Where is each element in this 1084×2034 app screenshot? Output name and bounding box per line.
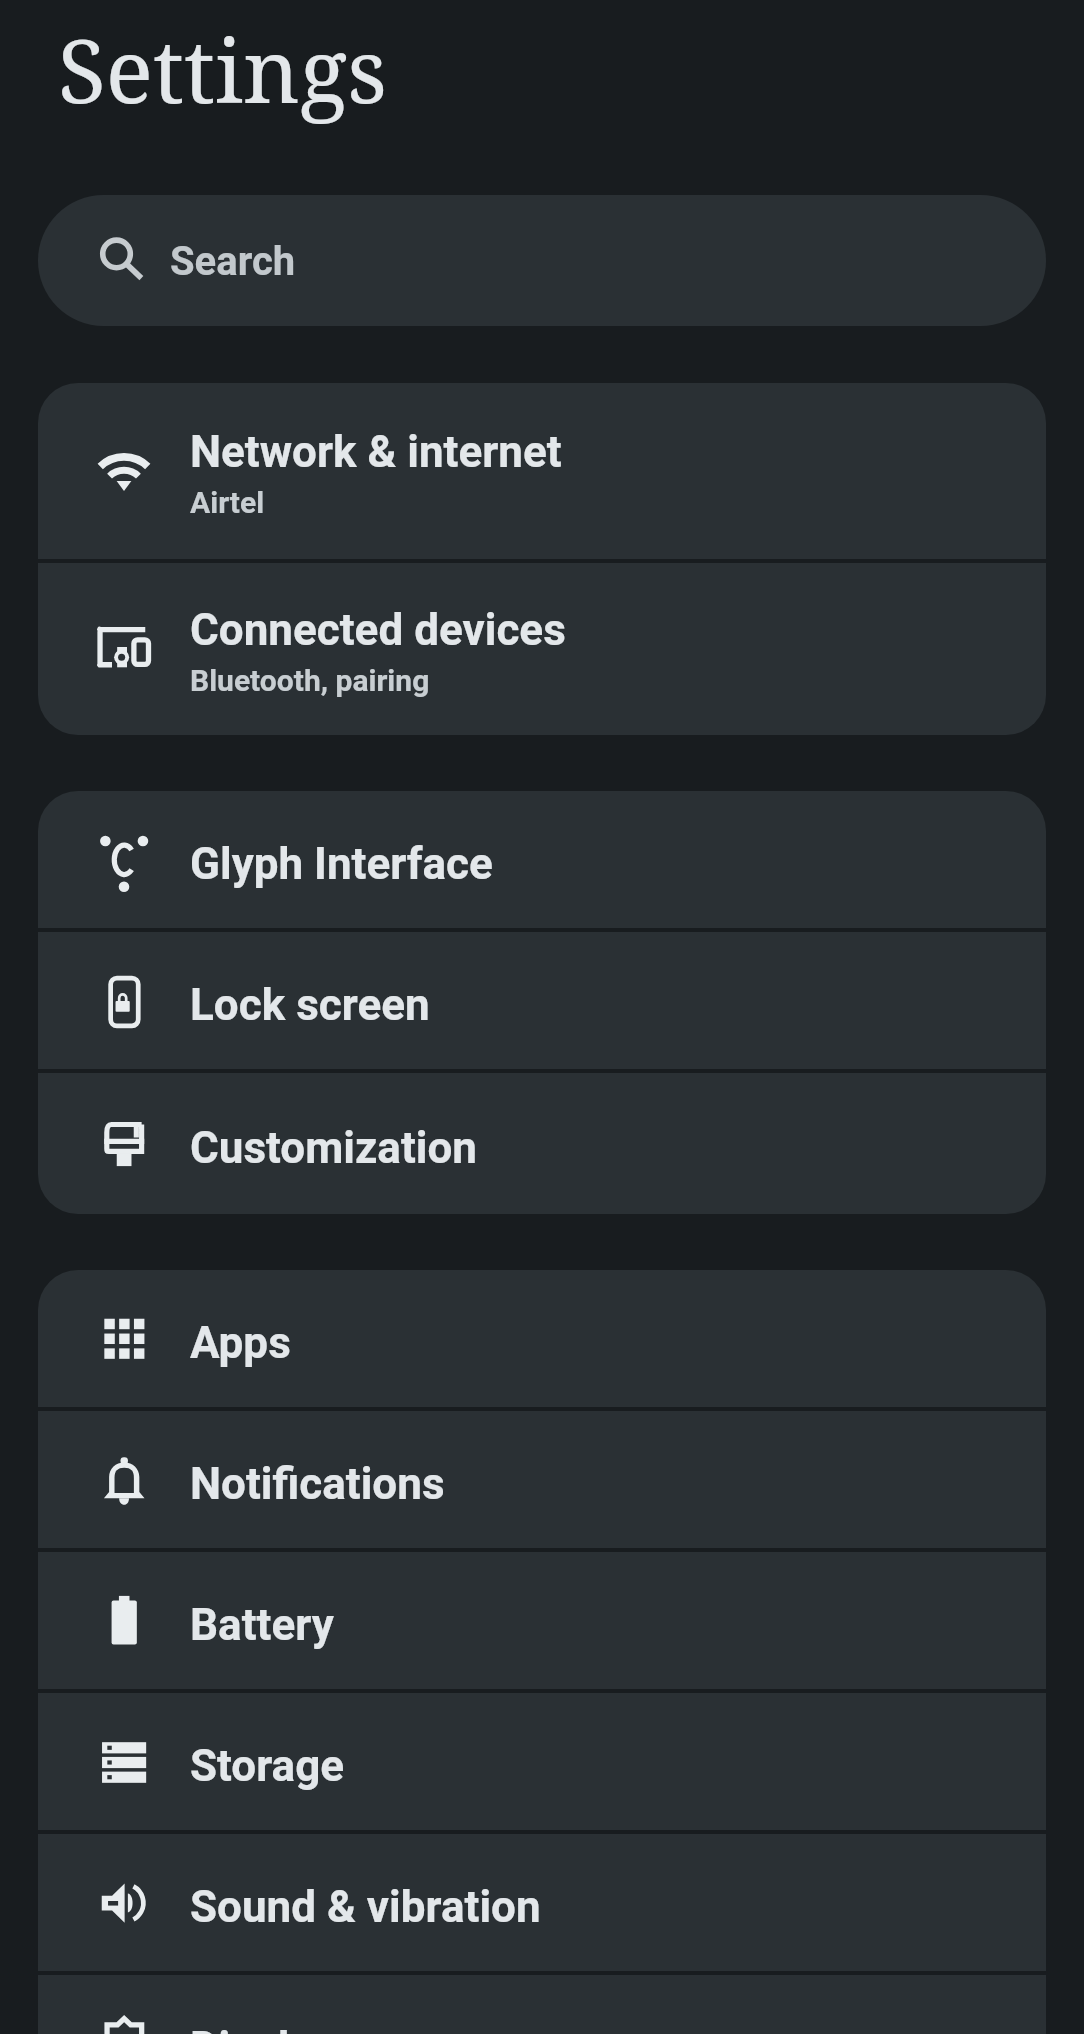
button[interactable]: Lock screen	[38, 932, 1046, 1069]
staticText: Network & internet	[190, 426, 562, 478]
button[interactable]: Customization	[38, 1073, 1046, 1214]
staticText: Airtel	[190, 485, 265, 520]
staticText: Lock screen	[190, 979, 430, 1031]
button[interactable]: Battery	[38, 1552, 1046, 1689]
staticText: Storage	[190, 1740, 345, 1792]
button[interactable]: Display	[38, 1975, 1046, 2034]
staticText: Customization	[190, 1122, 478, 1174]
staticText: Bluetooth, pairing	[190, 663, 430, 698]
staticText: Apps	[190, 1317, 291, 1369]
staticText: Battery	[190, 1599, 334, 1651]
button[interactable]: Network & internet	[38, 383, 1046, 559]
button[interactable]: Search	[38, 195, 1046, 326]
button[interactable]: Storage	[38, 1693, 1046, 1830]
staticText: Glyph Interface	[190, 838, 493, 890]
staticText: Connected devices	[190, 604, 566, 656]
button[interactable]: Notifications	[38, 1411, 1046, 1548]
staticText: Search	[170, 238, 296, 285]
button[interactable]: Sound & vibration	[38, 1834, 1046, 1971]
staticText: Notifications	[190, 1458, 445, 1510]
staticText: Settings	[58, 9, 387, 129]
staticText: Display	[190, 2022, 335, 2034]
button[interactable]: Connected devices	[38, 563, 1046, 735]
button[interactable]: Glyph Interface	[38, 791, 1046, 928]
staticText: Sound & vibration	[190, 1881, 541, 1933]
button[interactable]: Apps	[38, 1270, 1046, 1407]
